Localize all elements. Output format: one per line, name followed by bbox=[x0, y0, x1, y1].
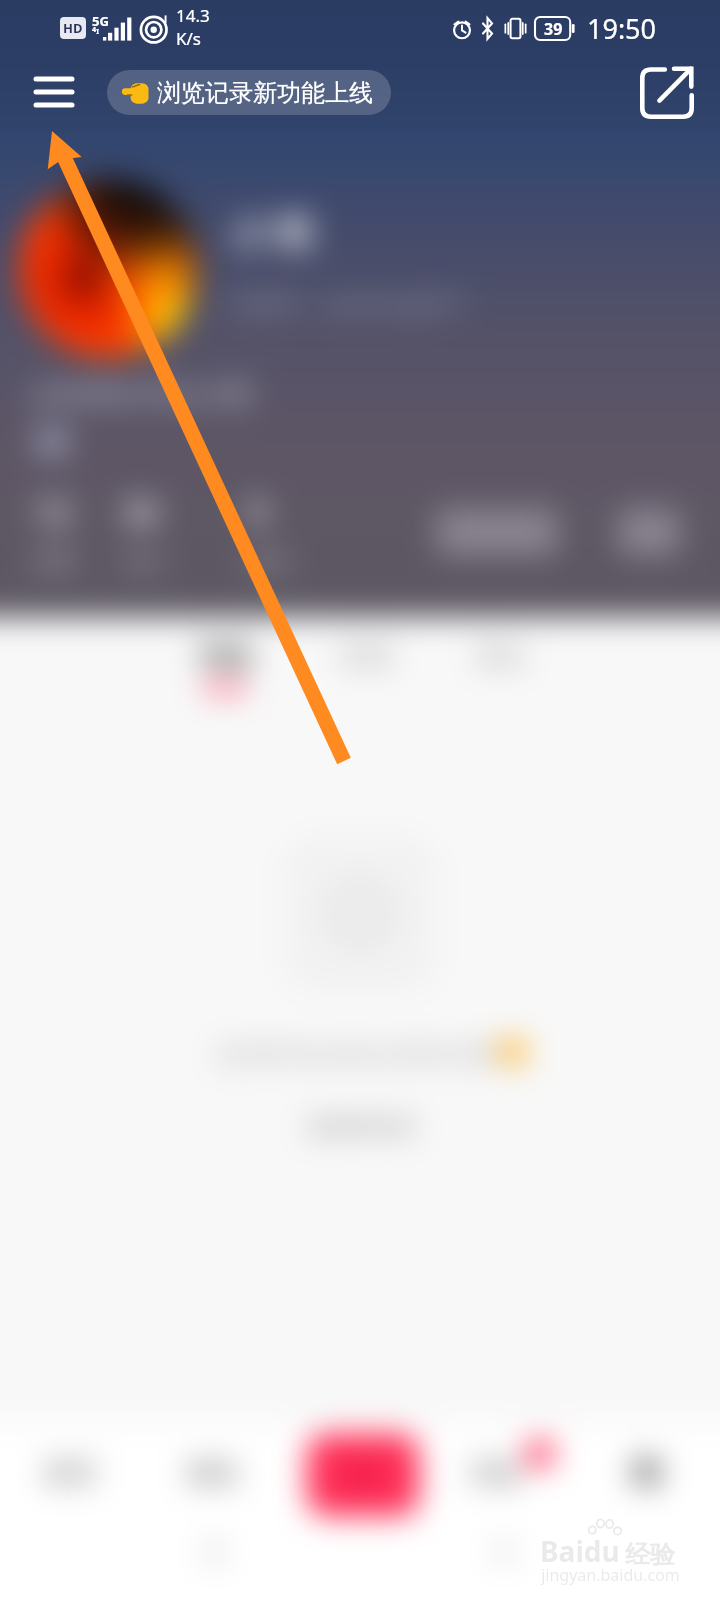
button[interactable]: 私密 bbox=[330, 640, 404, 706]
button[interactable] bbox=[618, 509, 680, 555]
button[interactable]: 去发布作品 bbox=[300, 1106, 420, 1148]
button[interactable]: 消息 bbox=[460, 1452, 532, 1494]
staticText: 粉丝 bbox=[248, 548, 290, 574]
staticText: ⁴ᴵ bbox=[92, 25, 100, 40]
staticText: HD bbox=[63, 19, 83, 37]
button[interactable] bbox=[436, 509, 558, 555]
button[interactable]: Share bbox=[640, 65, 694, 119]
staticText: 39 bbox=[544, 18, 563, 40]
staticText: 浏览记录新功能上线 bbox=[157, 78, 373, 108]
staticText: 作品 bbox=[199, 640, 251, 673]
staticText: 14.3 bbox=[176, 4, 210, 27]
staticText: 还没有作品,快去记录生活吧 bbox=[216, 1037, 499, 1068]
staticText: 消息 bbox=[469, 1456, 523, 1490]
staticText: 19:50 bbox=[587, 10, 657, 47]
staticText: 点击添加介绍,让大家 bbox=[30, 376, 253, 409]
button[interactable]: 朋友 bbox=[176, 1452, 250, 1494]
button[interactable] bbox=[307, 1434, 419, 1516]
button[interactable]: 我 bbox=[618, 1452, 672, 1494]
staticText: 经验 bbox=[625, 1539, 675, 1570]
button[interactable]: Menu bbox=[22, 62, 86, 126]
button[interactable]: 12 bbox=[34, 490, 110, 574]
staticText: K/s bbox=[176, 27, 201, 50]
staticText: 8 bbox=[248, 490, 267, 534]
staticText: 小 明 bbox=[230, 208, 312, 257]
button[interactable]: 36 bbox=[122, 490, 198, 574]
staticText: 首页 bbox=[43, 1456, 97, 1490]
staticText: 12 bbox=[34, 490, 71, 534]
button[interactable] bbox=[19, 179, 198, 358]
staticText: 36 bbox=[122, 490, 159, 534]
button[interactable]: 作品 bbox=[188, 640, 262, 706]
staticText: Baidu bbox=[540, 1532, 620, 1570]
button[interactable] bbox=[36, 428, 68, 456]
button[interactable]: 浏览记录新功能上线 bbox=[107, 70, 391, 115]
staticText: jingyan.baidu.com bbox=[541, 1564, 680, 1586]
staticText: 5G bbox=[92, 12, 109, 30]
button[interactable]: 喜欢 bbox=[464, 640, 538, 706]
button[interactable]: 首页 bbox=[34, 1452, 106, 1494]
staticText: 我 bbox=[631, 1455, 660, 1492]
button[interactable]: 8 bbox=[248, 490, 324, 574]
staticText: 朋友 bbox=[186, 1456, 240, 1490]
